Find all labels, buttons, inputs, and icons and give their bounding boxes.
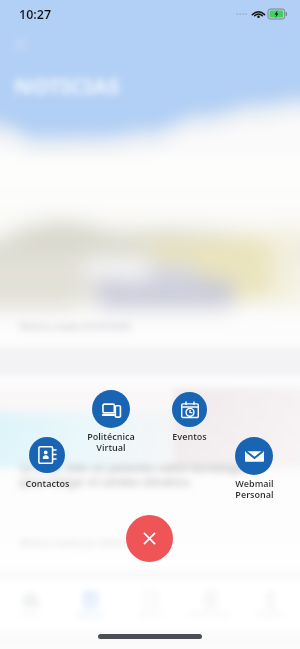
staticText: Eventos bbox=[172, 430, 207, 442]
staticText: Politécnica Virtual bbox=[87, 430, 135, 454]
staticText: Webmail Personal bbox=[235, 477, 274, 501]
button[interactable]: Noticias bbox=[60, 592, 120, 620]
staticText: Noticia creada por Admin bbox=[20, 536, 128, 548]
button[interactable]: Eventos bbox=[172, 392, 207, 427]
staticText: NOTICIAS bbox=[14, 70, 120, 100]
staticText: 10:27 bbox=[19, 6, 52, 23]
staticText: La UPM, líder en patentes sobre tecnolog… bbox=[20, 460, 251, 489]
button[interactable]: Contactos bbox=[29, 437, 65, 473]
button[interactable]: Cerrar menú bbox=[126, 515, 173, 562]
button[interactable]: Inicio bbox=[0, 592, 60, 620]
button[interactable]: Webmail Personal bbox=[235, 437, 273, 475]
staticText: Contactos bbox=[25, 477, 70, 489]
button[interactable]: Politécnica Virtual bbox=[92, 390, 130, 428]
